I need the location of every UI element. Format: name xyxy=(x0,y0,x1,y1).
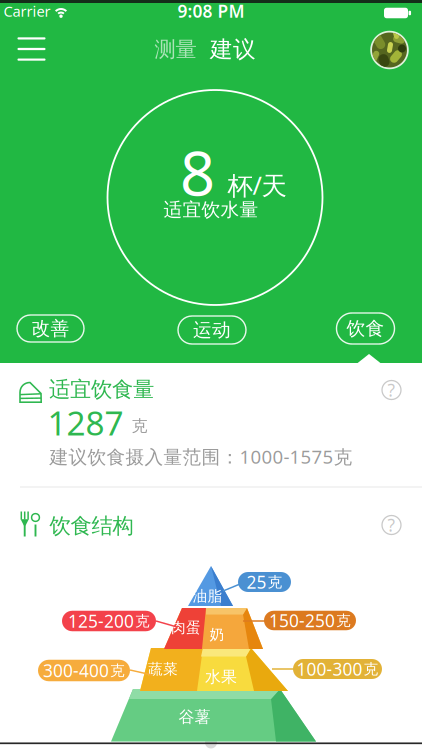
staticText: 测量 xyxy=(154,36,196,63)
staticText: 300-400 xyxy=(43,659,109,682)
staticText: ? xyxy=(387,513,395,536)
button[interactable]: 运动 xyxy=(178,316,246,344)
staticText: 谷薯 xyxy=(178,707,210,727)
staticText: 100-300 xyxy=(296,657,362,680)
staticText: 蔬菜 xyxy=(148,660,178,678)
staticText: ? xyxy=(387,378,395,401)
button[interactable]: Profile xyxy=(370,31,409,69)
staticText: 克 xyxy=(110,661,125,679)
staticText: 杯/天 xyxy=(227,168,286,202)
staticText: 奶 xyxy=(209,625,224,643)
button[interactable]: 测量 xyxy=(154,36,196,63)
staticText: 运动 xyxy=(193,318,231,341)
staticText: 饮食 xyxy=(346,317,384,340)
button[interactable]: Help xyxy=(382,378,401,401)
staticText: 建议饮食摄入量范围：1000-1575克 xyxy=(49,444,352,469)
staticText: 油脂 xyxy=(192,587,222,605)
button[interactable]: Menu xyxy=(17,37,45,61)
staticText: 建议 xyxy=(210,36,256,63)
staticText: 肉蛋 xyxy=(171,618,201,636)
staticText: 克 xyxy=(267,573,282,591)
staticText: 适宜饮食量 xyxy=(49,376,154,403)
staticText: 125-200 xyxy=(68,609,134,632)
staticText: 1287 xyxy=(47,400,123,445)
staticText: 克 xyxy=(131,416,147,436)
button[interactable]: 建议 xyxy=(210,36,256,63)
staticText: 9:08 PM xyxy=(177,0,244,22)
staticText: 150-250 xyxy=(269,609,335,632)
staticText: 改善 xyxy=(31,317,69,340)
button[interactable]: 饮食 xyxy=(336,313,394,344)
staticText: 25 xyxy=(246,570,266,593)
staticText: 适宜饮水量 xyxy=(163,198,258,221)
staticText: 克 xyxy=(135,612,150,630)
staticText: Carrier xyxy=(3,1,50,21)
button[interactable]: Help xyxy=(382,513,401,536)
staticText: 水果 xyxy=(205,667,237,687)
staticText: 饮食结构 xyxy=(49,513,133,539)
staticText: 8 xyxy=(180,131,215,213)
staticText: 克 xyxy=(336,611,351,629)
staticText: 克 xyxy=(363,660,378,678)
button[interactable]: 改善 xyxy=(17,315,84,342)
